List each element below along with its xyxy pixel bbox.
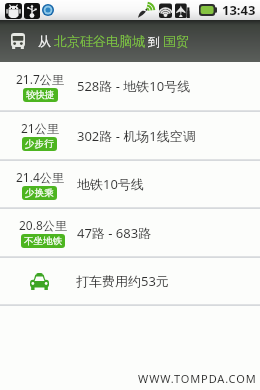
button[interactable]: 21.7公里 — [0, 62, 260, 110]
staticText: WWW.TOMPDA.COM — [138, 371, 257, 386]
staticText: 少换乘 — [25, 187, 54, 199]
staticText: 国贸 — [163, 33, 189, 49]
other: Bus route — [11, 33, 25, 49]
staticText: 13:43 — [222, 1, 256, 19]
staticText: 47路 - 683路 — [77, 224, 152, 242]
staticText: 地铁10号线 — [77, 175, 144, 193]
button[interactable]: 20.8公里 — [0, 209, 260, 256]
other: Taxi fare — [30, 273, 49, 290]
staticText: 少步行 — [25, 138, 54, 150]
staticText: 528路 - 地铁10号线 — [77, 77, 191, 95]
button[interactable]: Taxi fare — [0, 258, 260, 304]
staticText: 不坐地铁 — [24, 235, 62, 247]
staticText: 北京硅谷电脑城 — [54, 33, 145, 49]
button[interactable]: 21.4公里 — [0, 161, 260, 207]
staticText: 到 — [148, 34, 160, 49]
staticText: 20.8公里 — [19, 217, 67, 233]
staticText: 302路 - 机场1线空调 — [77, 127, 196, 145]
staticText: 21.7公里 — [16, 71, 64, 87]
staticText: 较快捷 — [26, 89, 55, 101]
staticText: 从 — [38, 33, 51, 49]
button[interactable]: 21公里 — [0, 112, 260, 159]
staticText: 21.4公里 — [16, 169, 64, 185]
button[interactable]: Bus route — [0, 20, 260, 62]
staticText: 打车费用约53元 — [76, 272, 169, 290]
staticText: 21公里 — [21, 120, 59, 136]
